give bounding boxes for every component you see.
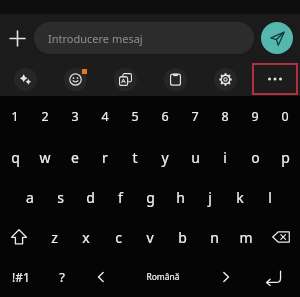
staticText: Română: [146, 271, 180, 283]
staticText: a: [26, 188, 34, 207]
button[interactable]: Previous language: [81, 257, 120, 297]
staticText: 2: [41, 108, 49, 125]
button[interactable]: Shift: [0, 217, 38, 257]
staticText: Introducere mesaj: [48, 31, 143, 46]
button[interactable]: r: [90, 137, 120, 177]
staticText: 4: [101, 108, 109, 125]
button[interactable]: Română: [120, 257, 206, 297]
button[interactable]: Backspace: [262, 217, 300, 257]
button[interactable]: u: [180, 137, 210, 177]
staticText: z: [51, 228, 58, 247]
staticText: f: [118, 188, 123, 207]
button[interactable]: n: [198, 217, 230, 257]
button[interactable]: 9: [240, 96, 270, 137]
staticText: u: [191, 148, 200, 167]
button[interactable]: a: [15, 177, 45, 217]
button[interactable]: f: [105, 177, 135, 217]
button[interactable]: j: [195, 177, 225, 217]
button[interactable]: Next language: [206, 257, 245, 297]
button[interactable]: More options: [253, 64, 297, 94]
button[interactable]: i: [210, 137, 240, 177]
staticText: 8: [221, 108, 229, 125]
button[interactable]: z: [38, 217, 70, 257]
staticText: 3: [71, 108, 79, 125]
staticText: x: [82, 228, 90, 247]
button[interactable]: l: [255, 177, 285, 217]
button[interactable]: v: [134, 217, 166, 257]
button[interactable]: b: [166, 217, 198, 257]
button[interactable]: m: [230, 217, 262, 257]
staticText: w: [39, 148, 51, 167]
button[interactable]: Send: [261, 22, 293, 54]
staticText: r: [102, 148, 108, 167]
staticText: h: [176, 188, 185, 207]
button[interactable]: c: [102, 217, 134, 257]
button[interactable]: !#1: [0, 257, 42, 297]
staticText: 5: [131, 108, 139, 125]
button[interactable]: Introducere mesaj: [34, 22, 254, 54]
button[interactable]: h: [165, 177, 195, 217]
button[interactable]: 7: [180, 96, 210, 137]
staticText: g: [146, 188, 155, 207]
button[interactable]: Clipboard: [164, 68, 187, 91]
button[interactable]: 0: [270, 96, 300, 137]
button[interactable]: Effects: [14, 68, 37, 91]
staticText: 7: [191, 108, 199, 125]
staticText: v: [146, 228, 154, 247]
button[interactable]: Translate: [114, 68, 137, 91]
staticText: i: [223, 148, 227, 167]
staticText: q: [11, 148, 20, 167]
staticText: m: [239, 228, 253, 247]
button[interactable]: g: [135, 177, 165, 217]
staticText: 9: [251, 108, 259, 125]
button[interactable]: k: [225, 177, 255, 217]
button[interactable]: 5: [120, 96, 150, 137]
staticText: ?: [59, 268, 65, 286]
staticText: !#1: [12, 269, 30, 285]
staticText: n: [210, 228, 219, 247]
staticText: c: [115, 228, 122, 247]
button[interactable]: 8: [210, 96, 240, 137]
button[interactable]: Settings: [214, 68, 237, 91]
staticText: 6: [161, 108, 169, 125]
button[interactable]: 1: [0, 96, 30, 137]
staticText: 1: [11, 108, 19, 125]
button[interactable]: x: [70, 217, 102, 257]
button[interactable]: 4: [90, 96, 120, 137]
staticText: b: [178, 228, 187, 247]
button[interactable]: s: [45, 177, 75, 217]
button[interactable]: e: [60, 137, 90, 177]
staticText: k: [236, 188, 244, 207]
button[interactable]: w: [30, 137, 60, 177]
button[interactable]: 6: [150, 96, 180, 137]
button[interactable]: q: [0, 137, 30, 177]
button[interactable]: d: [75, 177, 105, 217]
button[interactable]: o: [240, 137, 270, 177]
staticText: y: [161, 148, 169, 167]
button[interactable]: Emoji: [64, 68, 87, 91]
button[interactable]: ?: [42, 257, 81, 297]
staticText: o: [251, 148, 260, 167]
button[interactable]: 3: [60, 96, 90, 137]
button[interactable]: t: [120, 137, 150, 177]
staticText: s: [57, 188, 64, 207]
staticText: l: [268, 188, 272, 207]
staticText: p: [281, 148, 290, 167]
button[interactable]: Add attachment: [0, 21, 34, 55]
staticText: 0: [281, 108, 289, 125]
staticText: d: [86, 188, 95, 207]
button[interactable]: y: [150, 137, 180, 177]
button[interactable]: 2: [30, 96, 60, 137]
button[interactable]: p: [270, 137, 300, 177]
staticText: j: [208, 188, 212, 207]
staticText: t: [132, 148, 138, 167]
staticText: e: [71, 148, 79, 167]
button[interactable]: Enter: [245, 257, 300, 297]
